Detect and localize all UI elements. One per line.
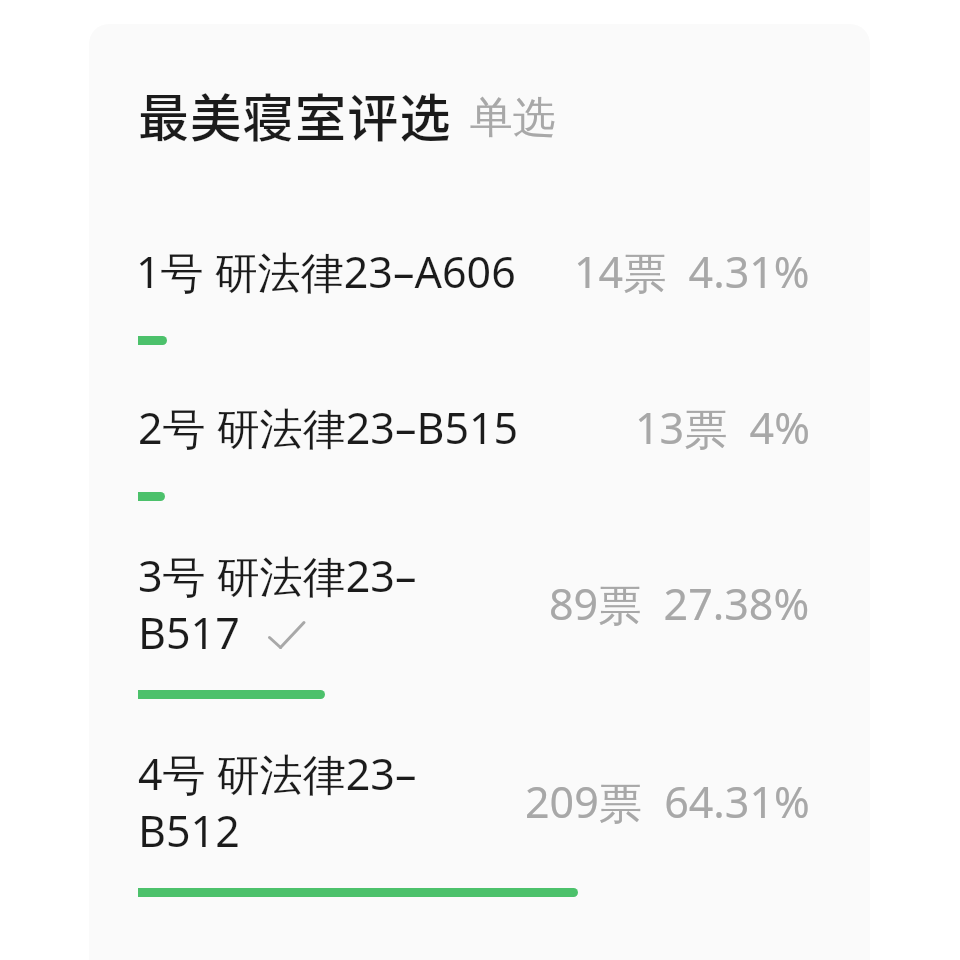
staticText: B517 (138, 603, 240, 662)
staticText: 4号 研法律23– (138, 744, 417, 803)
staticText: 209票 64.31% (525, 772, 810, 831)
staticText: 最美寝室评选 (138, 78, 452, 152)
staticText: B512 (138, 801, 240, 860)
button[interactable]: 3号 研法律23– (89, 542, 870, 740)
staticText: 89票 27.38% (549, 574, 810, 633)
button[interactable]: 2号 研法律23–B515 (89, 386, 870, 542)
staticText: 单选 (470, 91, 556, 145)
staticText: 14票 4.31% (574, 242, 810, 301)
staticText: 2号 研法律23–B515 (138, 398, 519, 457)
button[interactable]: 1号 研法律23–A606 (89, 230, 870, 386)
button[interactable]: 4号 研法律23– (89, 740, 870, 938)
staticText: 13票 4% (635, 398, 810, 457)
staticText: 1号 研法律23–A606 (136, 242, 516, 301)
staticText: 3号 研法律23– (138, 546, 417, 605)
other: Selected option (268, 621, 308, 651)
